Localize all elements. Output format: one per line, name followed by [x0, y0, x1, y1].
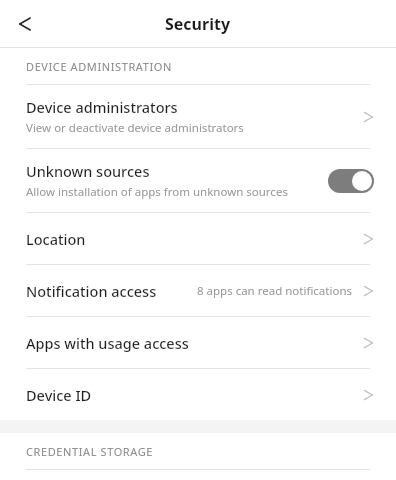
staticText: Allow installation of apps from unknown …	[26, 184, 288, 200]
staticText: View or deactivate device administrators	[26, 120, 244, 136]
button[interactable]: Unknown sources toggle	[328, 169, 374, 193]
staticText: CREDENTIAL STORAGE	[26, 444, 154, 459]
button[interactable]: Device ID	[0, 369, 396, 420]
button[interactable]: Back	[0, 0, 48, 47]
staticText: Device ID	[26, 385, 92, 405]
button[interactable]: Notification access	[0, 265, 396, 316]
staticText: Notification access	[26, 281, 157, 301]
staticText: 8 apps can read notifications	[196, 283, 352, 299]
staticText: Unknown sources	[26, 161, 150, 181]
staticText: Apps with usage access	[26, 333, 189, 353]
staticText: Device administrators	[26, 97, 178, 117]
button[interactable]: Device administrators	[0, 85, 396, 148]
button[interactable]: Apps with usage access	[0, 317, 396, 368]
staticText: DEVICE ADMINISTRATION	[26, 59, 172, 74]
button[interactable]: Unknown sources	[0, 149, 396, 212]
button[interactable]: Location	[0, 213, 396, 264]
staticText: Security	[165, 13, 231, 35]
staticText: Location	[26, 229, 86, 249]
